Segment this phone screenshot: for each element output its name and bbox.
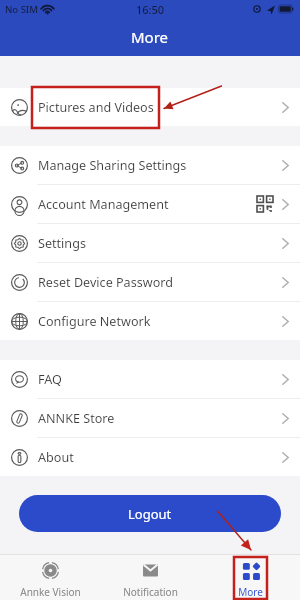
- button[interactable]: Manage Sharing Settings: [0, 146, 300, 184]
- staticText: No SIM: [5, 3, 38, 16]
- staticText: About: [38, 449, 74, 466]
- button[interactable]: FAQ: [0, 360, 300, 398]
- staticText: FAQ: [38, 371, 62, 388]
- staticText: More: [238, 585, 263, 599]
- staticText: Configure Network: [38, 313, 151, 330]
- staticText: Annke Vision: [20, 585, 81, 599]
- staticText: Logout: [128, 505, 172, 523]
- button[interactable]: Account Management: [0, 185, 300, 223]
- button[interactable]: Reset Device Password: [0, 263, 300, 301]
- staticText: Reset Device Password: [38, 274, 173, 291]
- button[interactable]: Pictures and Videos: [0, 88, 300, 126]
- button[interactable]: Scan QR code: [257, 196, 273, 212]
- button[interactable]: About: [0, 438, 300, 476]
- staticText: Account Management: [38, 196, 169, 213]
- staticText: 16:50: [136, 2, 165, 17]
- staticText: Settings: [38, 235, 86, 252]
- button[interactable]: Settings: [0, 224, 300, 262]
- button[interactable]: ANNKE Store: [0, 399, 300, 437]
- button[interactable]: Annke Vision: [0, 555, 100, 599]
- staticText: Notification: [123, 585, 178, 599]
- staticText: More: [131, 27, 169, 47]
- staticText: Pictures and Videos: [38, 99, 154, 116]
- staticText: ANNKE Store: [38, 410, 115, 427]
- button[interactable]: More: [200, 555, 300, 599]
- staticText: Manage Sharing Settings: [38, 157, 187, 174]
- button[interactable]: Logout: [19, 495, 281, 532]
- button[interactable]: Notification: [100, 555, 200, 599]
- button[interactable]: Configure Network: [0, 302, 300, 340]
